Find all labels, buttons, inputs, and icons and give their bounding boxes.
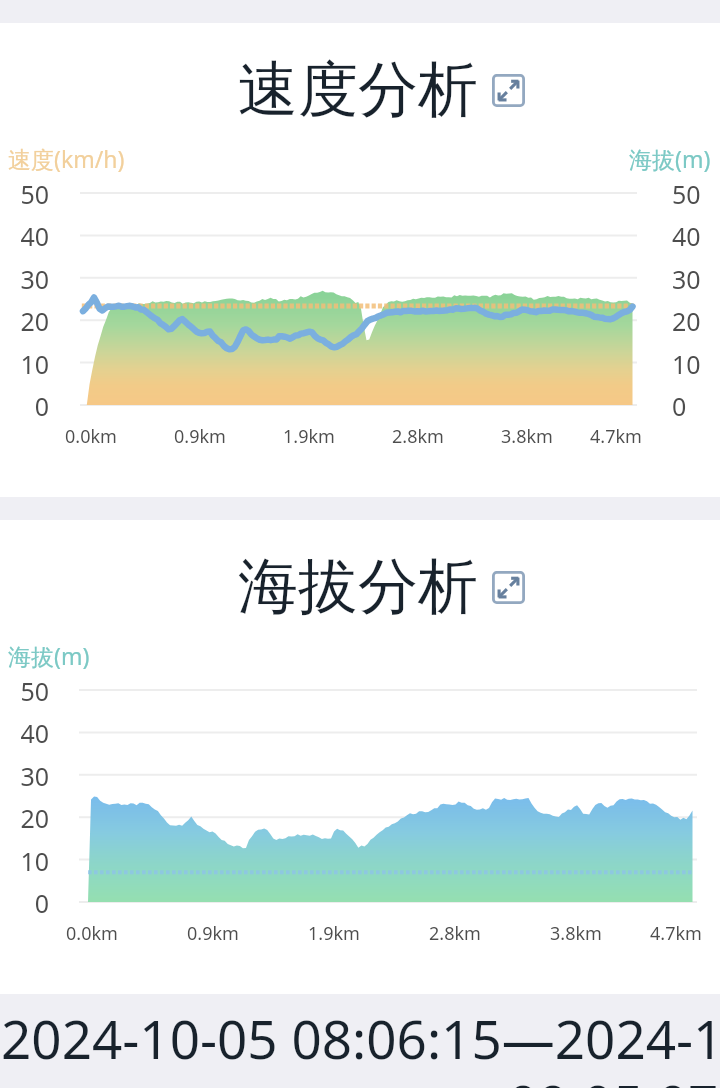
- staticText: 50: [0, 674, 49, 708]
- staticText: 50: [672, 177, 720, 211]
- staticText: 4.7km: [626, 921, 720, 946]
- staticText: 1.9km: [284, 921, 384, 946]
- staticText: 10: [672, 347, 720, 381]
- staticText: 10: [0, 347, 49, 381]
- staticText: 0.0km: [42, 921, 142, 946]
- staticText: 30: [672, 262, 720, 296]
- staticText: 0: [672, 389, 720, 423]
- staticText: 海拔(m): [629, 143, 711, 174]
- staticText: 09:05:07: [508, 1067, 719, 1088]
- other: Expand chart: [492, 74, 525, 107]
- staticText: 速度(km/h): [8, 143, 125, 174]
- staticText: 40: [0, 219, 49, 253]
- button[interactable]: 海拔分析: [238, 549, 525, 625]
- staticText: 0: [0, 886, 49, 920]
- staticText: 4.7km: [566, 424, 666, 449]
- staticText: 0.0km: [41, 424, 141, 449]
- staticText: 30: [0, 262, 49, 296]
- staticText: 40: [0, 716, 49, 750]
- staticText: 30: [0, 759, 49, 793]
- staticText: 2024-10-05 08:06:15—2024-1: [1, 1002, 720, 1074]
- staticText: 1.9km: [259, 424, 359, 449]
- button[interactable]: 速度分析: [238, 52, 525, 128]
- other: Expand chart: [492, 571, 525, 604]
- staticText: 20: [0, 801, 49, 835]
- staticText: 10: [0, 844, 49, 878]
- staticText: 3.8km: [477, 424, 577, 449]
- staticText: 50: [0, 177, 49, 211]
- staticText: 海拔(m): [8, 640, 90, 671]
- staticText: 40: [672, 219, 720, 253]
- staticText: 3.8km: [526, 921, 626, 946]
- staticText: 海拔分析: [238, 549, 478, 625]
- staticText: 0: [0, 389, 49, 423]
- staticText: 20: [0, 304, 49, 338]
- staticText: 速度分析: [238, 52, 478, 128]
- staticText: 2.8km: [405, 921, 505, 946]
- staticText: 0.9km: [150, 424, 250, 449]
- staticText: 20: [672, 304, 720, 338]
- staticText: 2.8km: [368, 424, 468, 449]
- staticText: 0.9km: [163, 921, 263, 946]
